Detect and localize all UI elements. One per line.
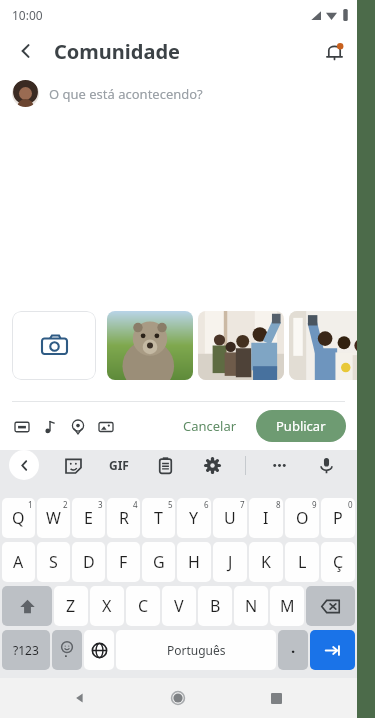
button[interactable]: Shift xyxy=(2,586,52,626)
staticText: J xyxy=(228,551,233,573)
button[interactable]: O xyxy=(285,498,319,538)
staticText: Z xyxy=(66,595,76,617)
button[interactable]: U xyxy=(213,498,247,538)
staticText: 4 xyxy=(133,499,138,510)
button[interactable]: J xyxy=(213,542,247,582)
button[interactable]: Add music xyxy=(40,417,59,436)
staticText: . xyxy=(291,637,296,657)
button[interactable]: Y xyxy=(177,498,211,538)
staticText: G xyxy=(153,551,165,573)
staticText: H xyxy=(188,551,200,573)
staticText: A xyxy=(13,551,24,573)
staticText: Publicar xyxy=(276,417,326,435)
staticText: M xyxy=(280,595,295,617)
button[interactable]: ?123 xyxy=(2,630,50,670)
button[interactable]: More options xyxy=(265,451,293,479)
button[interactable]: Ç xyxy=(321,542,355,582)
button[interactable]: S xyxy=(37,542,70,582)
button[interactable]: N xyxy=(234,586,268,626)
staticText: ?123 xyxy=(13,642,39,658)
staticText: 10:00 xyxy=(12,7,43,23)
staticText: 2 xyxy=(63,499,68,510)
button[interactable]: G xyxy=(142,542,175,582)
staticText: R xyxy=(119,507,129,529)
button[interactable]: Português xyxy=(116,630,276,670)
button[interactable]: H xyxy=(177,542,211,582)
staticText: K xyxy=(261,551,271,573)
button[interactable]: E xyxy=(72,498,105,538)
staticText: 0 xyxy=(348,499,353,510)
button[interactable]: D xyxy=(72,542,105,582)
staticText: Cancelar xyxy=(183,417,237,435)
button[interactable]: Enter xyxy=(310,630,355,670)
button[interactable]: Z xyxy=(54,586,88,626)
staticText: P xyxy=(333,507,343,529)
button[interactable]: Back xyxy=(8,33,44,69)
button[interactable]: Clipboard xyxy=(151,451,179,479)
staticText: W xyxy=(46,507,61,529)
staticText: L xyxy=(298,551,307,573)
button[interactable]: Stickers xyxy=(59,451,87,479)
staticText: 5 xyxy=(168,499,173,510)
button[interactable]: R xyxy=(107,498,140,538)
button[interactable]: P xyxy=(321,498,355,538)
staticText: S xyxy=(49,551,58,573)
staticText: E xyxy=(84,507,93,529)
button[interactable]: T xyxy=(142,498,175,538)
button[interactable]: Photo 2 xyxy=(198,311,284,380)
button[interactable]: Photo 1 xyxy=(107,311,193,380)
button[interactable]: L xyxy=(285,542,319,582)
button[interactable]: Settings xyxy=(198,451,226,479)
staticText: 9 xyxy=(312,499,317,510)
staticText: I xyxy=(263,507,269,529)
staticText: B xyxy=(210,595,221,617)
button[interactable]: Profile xyxy=(12,80,39,107)
button[interactable]: Notifications xyxy=(317,34,351,68)
button[interactable]: . xyxy=(278,630,308,670)
button[interactable]: Back xyxy=(63,681,97,715)
button[interactable]: V xyxy=(162,586,196,626)
button[interactable]: Back xyxy=(9,450,39,480)
button[interactable]: Q xyxy=(2,498,35,538)
button[interactable]: Add GIF xyxy=(12,417,31,436)
button[interactable]: B xyxy=(198,586,232,626)
staticText: T xyxy=(154,507,163,529)
button[interactable]: M xyxy=(270,586,304,626)
button[interactable]: K xyxy=(249,542,283,582)
staticText: GIF xyxy=(109,457,129,473)
staticText: F xyxy=(119,551,128,573)
button[interactable]: C xyxy=(126,586,160,626)
button[interactable]: X xyxy=(90,586,124,626)
staticText: 8 xyxy=(276,499,281,510)
button[interactable]: F xyxy=(107,542,140,582)
button[interactable]: Home xyxy=(161,681,195,715)
button[interactable]: Cancelar xyxy=(177,413,243,439)
staticText: 7 xyxy=(240,499,245,510)
button[interactable]: Recent apps xyxy=(259,681,293,715)
button[interactable]: Take photo xyxy=(12,311,96,380)
button[interactable]: Backspace xyxy=(306,586,355,626)
button[interactable]: Add location xyxy=(68,417,87,436)
button[interactable]: W xyxy=(37,498,70,538)
button[interactable]: Photo 3 xyxy=(289,311,375,380)
staticText: Português xyxy=(167,642,226,658)
staticText: U xyxy=(224,507,236,529)
button[interactable]: GIF xyxy=(106,454,132,476)
staticText: Q xyxy=(12,507,25,529)
staticText: Ç xyxy=(333,551,344,573)
staticText: Comunidade xyxy=(54,38,181,65)
staticText: 1 xyxy=(28,499,33,510)
staticText: 6 xyxy=(204,499,209,510)
button[interactable]: A xyxy=(2,542,35,582)
staticText: Y xyxy=(189,507,199,529)
button[interactable]: I xyxy=(249,498,283,538)
staticText: X xyxy=(102,595,112,617)
staticText: 3 xyxy=(98,499,103,510)
button[interactable]: Add image xyxy=(96,417,115,436)
staticText: O que está acontecendo? xyxy=(49,85,203,103)
button[interactable]: Change language xyxy=(84,630,114,670)
staticText: N xyxy=(245,595,258,617)
button[interactable]: Voice input xyxy=(312,451,340,479)
button[interactable]: Publicar xyxy=(256,410,346,442)
button[interactable]: Emoji xyxy=(52,630,82,670)
